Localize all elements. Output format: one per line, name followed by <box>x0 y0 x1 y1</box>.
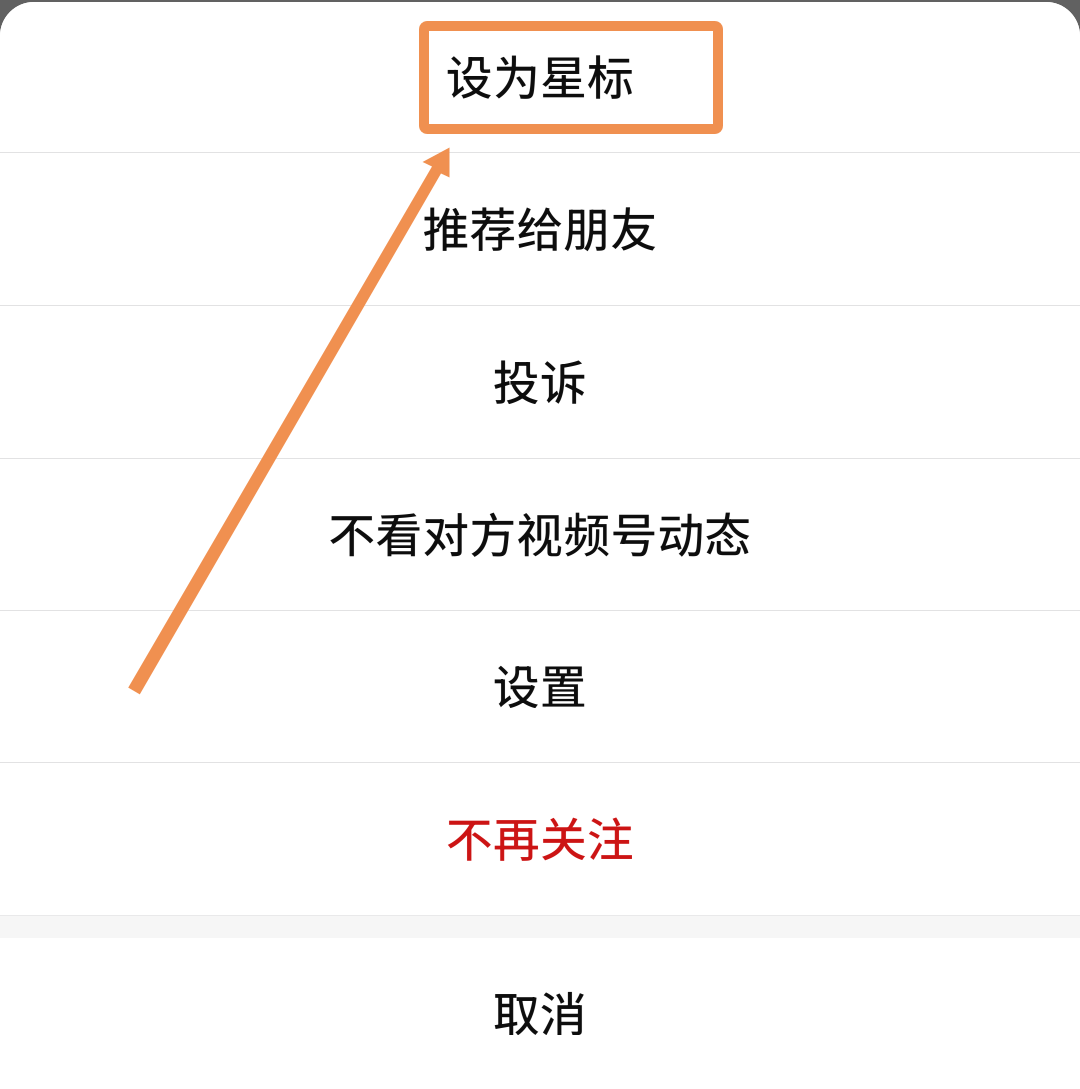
button[interactable]: 不看对方视频号动态 <box>0 459 1080 610</box>
button[interactable]: 不再关注 <box>0 763 1080 915</box>
button[interactable]: 设置 <box>0 611 1080 762</box>
staticText: 投诉 <box>493 346 587 413</box>
staticText: 取消 <box>493 977 587 1045</box>
staticText: 设为星标 <box>446 41 634 108</box>
staticText: 不再关注 <box>446 803 634 870</box>
button[interactable]: 设为星标 <box>0 2 1080 152</box>
button[interactable]: 取消 <box>0 938 1080 1089</box>
staticText: 不看对方视频号动态 <box>328 498 751 566</box>
button[interactable]: 推荐给朋友 <box>0 153 1080 305</box>
button[interactable]: 投诉 <box>0 306 1080 458</box>
staticText: 推荐给朋友 <box>422 193 657 260</box>
staticText: 设置 <box>493 650 587 718</box>
